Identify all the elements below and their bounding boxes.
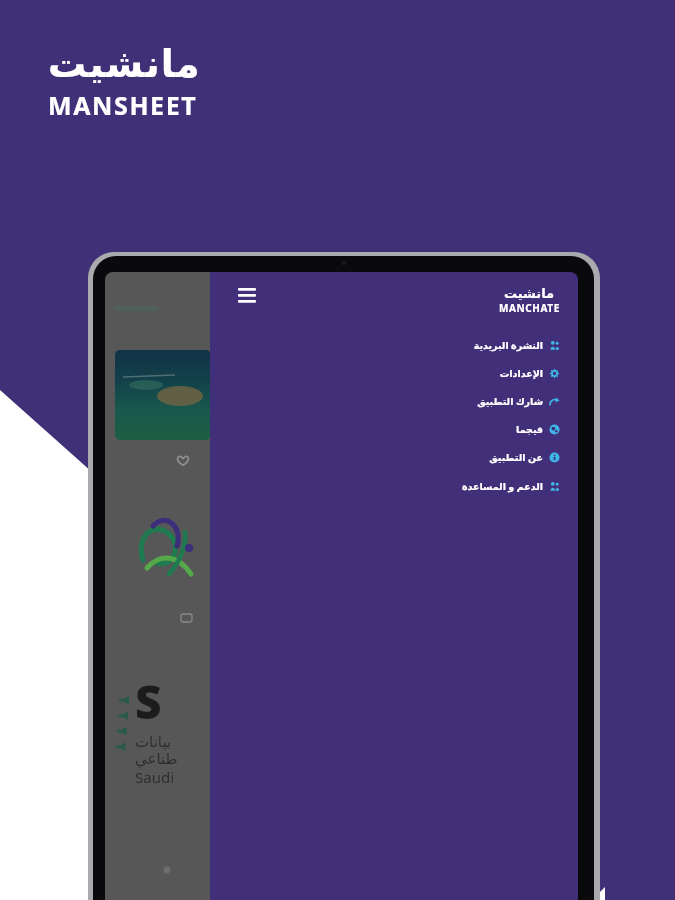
staticText: MANSHEET	[48, 88, 198, 122]
staticText: MANCHATE	[499, 301, 560, 315]
button[interactable]: عن التطبيق	[210, 443, 578, 472]
button[interactable]: شارك التطبيق	[210, 387, 578, 416]
button[interactable]: فيجما	[210, 416, 578, 443]
staticText: النشرة البريدية	[473, 339, 543, 352]
staticText: عن التطبيق	[489, 451, 543, 464]
button[interactable]: النشرة البريدية	[210, 331, 578, 360]
staticText: شارك التطبيق	[477, 395, 543, 408]
staticText: بيانات	[135, 733, 172, 750]
staticText: Saudi	[135, 767, 175, 787]
staticText: الدعم و المساعدة	[461, 480, 543, 493]
staticText: S	[135, 670, 162, 733]
button[interactable]: الدعم و المساعدة	[210, 472, 578, 501]
staticText: مانشيت	[48, 42, 201, 86]
button[interactable]: الإعدادات	[210, 360, 578, 387]
staticText: مانشيت	[504, 286, 555, 301]
staticText: فيجما	[516, 424, 543, 435]
staticText: طناعي	[135, 750, 178, 767]
button[interactable]: Open navigation menu	[230, 280, 264, 314]
staticText: الإعدادات	[499, 368, 543, 379]
